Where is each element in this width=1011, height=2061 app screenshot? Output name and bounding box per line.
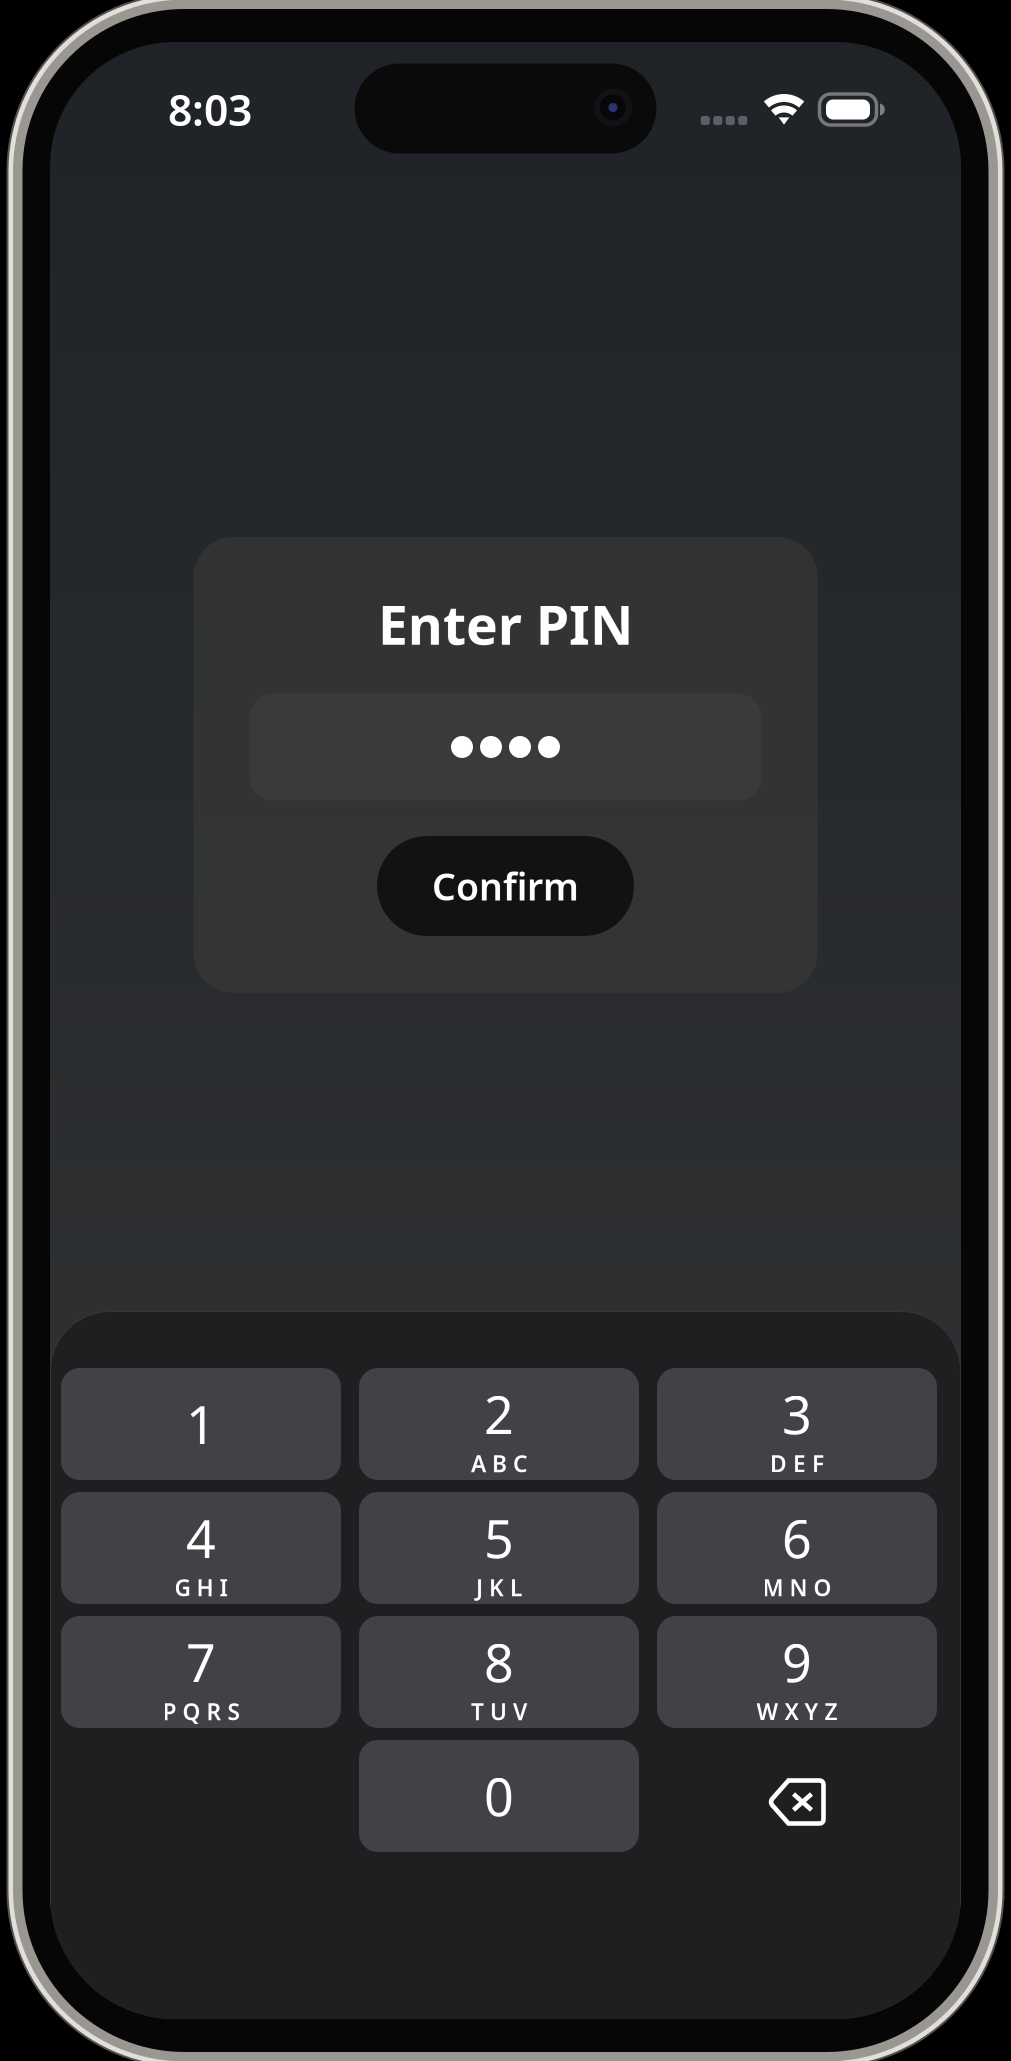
button[interactable]: 9 — [657, 1616, 937, 1728]
staticText: 8 — [484, 1627, 514, 1696]
staticText: T U V — [471, 1696, 527, 1727]
button[interactable]: 3 — [657, 1368, 937, 1480]
button[interactable]: 6 — [657, 1492, 937, 1604]
button[interactable]: Delete — [657, 1740, 937, 1852]
button[interactable]: 8 — [359, 1616, 639, 1728]
staticText: 6 — [782, 1503, 812, 1572]
staticText: P Q R S — [162, 1696, 239, 1727]
staticText: Confirm — [432, 861, 579, 911]
staticText: 1 — [186, 1389, 216, 1459]
staticText: 8:03 — [168, 81, 252, 138]
staticText: M N O — [762, 1572, 831, 1603]
staticText: 3 — [782, 1379, 812, 1448]
button[interactable]: 1 — [61, 1368, 341, 1480]
button[interactable]: 4 — [61, 1492, 341, 1604]
staticText: 7 — [186, 1627, 216, 1696]
staticText: 2 — [484, 1379, 514, 1448]
staticText: 4 — [186, 1503, 216, 1572]
staticText: Enter PIN — [378, 589, 633, 659]
staticText: D E F — [770, 1448, 824, 1479]
button[interactable]: 7 — [61, 1616, 341, 1728]
staticText: 5 — [484, 1503, 514, 1572]
staticText: W X Y Z — [756, 1696, 837, 1727]
button[interactable]: Confirm — [377, 836, 634, 936]
button[interactable]: 0 — [359, 1740, 639, 1852]
button[interactable]: 5 — [359, 1492, 639, 1604]
staticText: J K L — [476, 1572, 522, 1603]
staticText: 9 — [782, 1627, 812, 1696]
staticText: G H I — [174, 1572, 227, 1603]
staticText: 0 — [484, 1761, 514, 1831]
button[interactable]: 2 — [359, 1368, 639, 1480]
staticText: A B C — [471, 1448, 527, 1479]
